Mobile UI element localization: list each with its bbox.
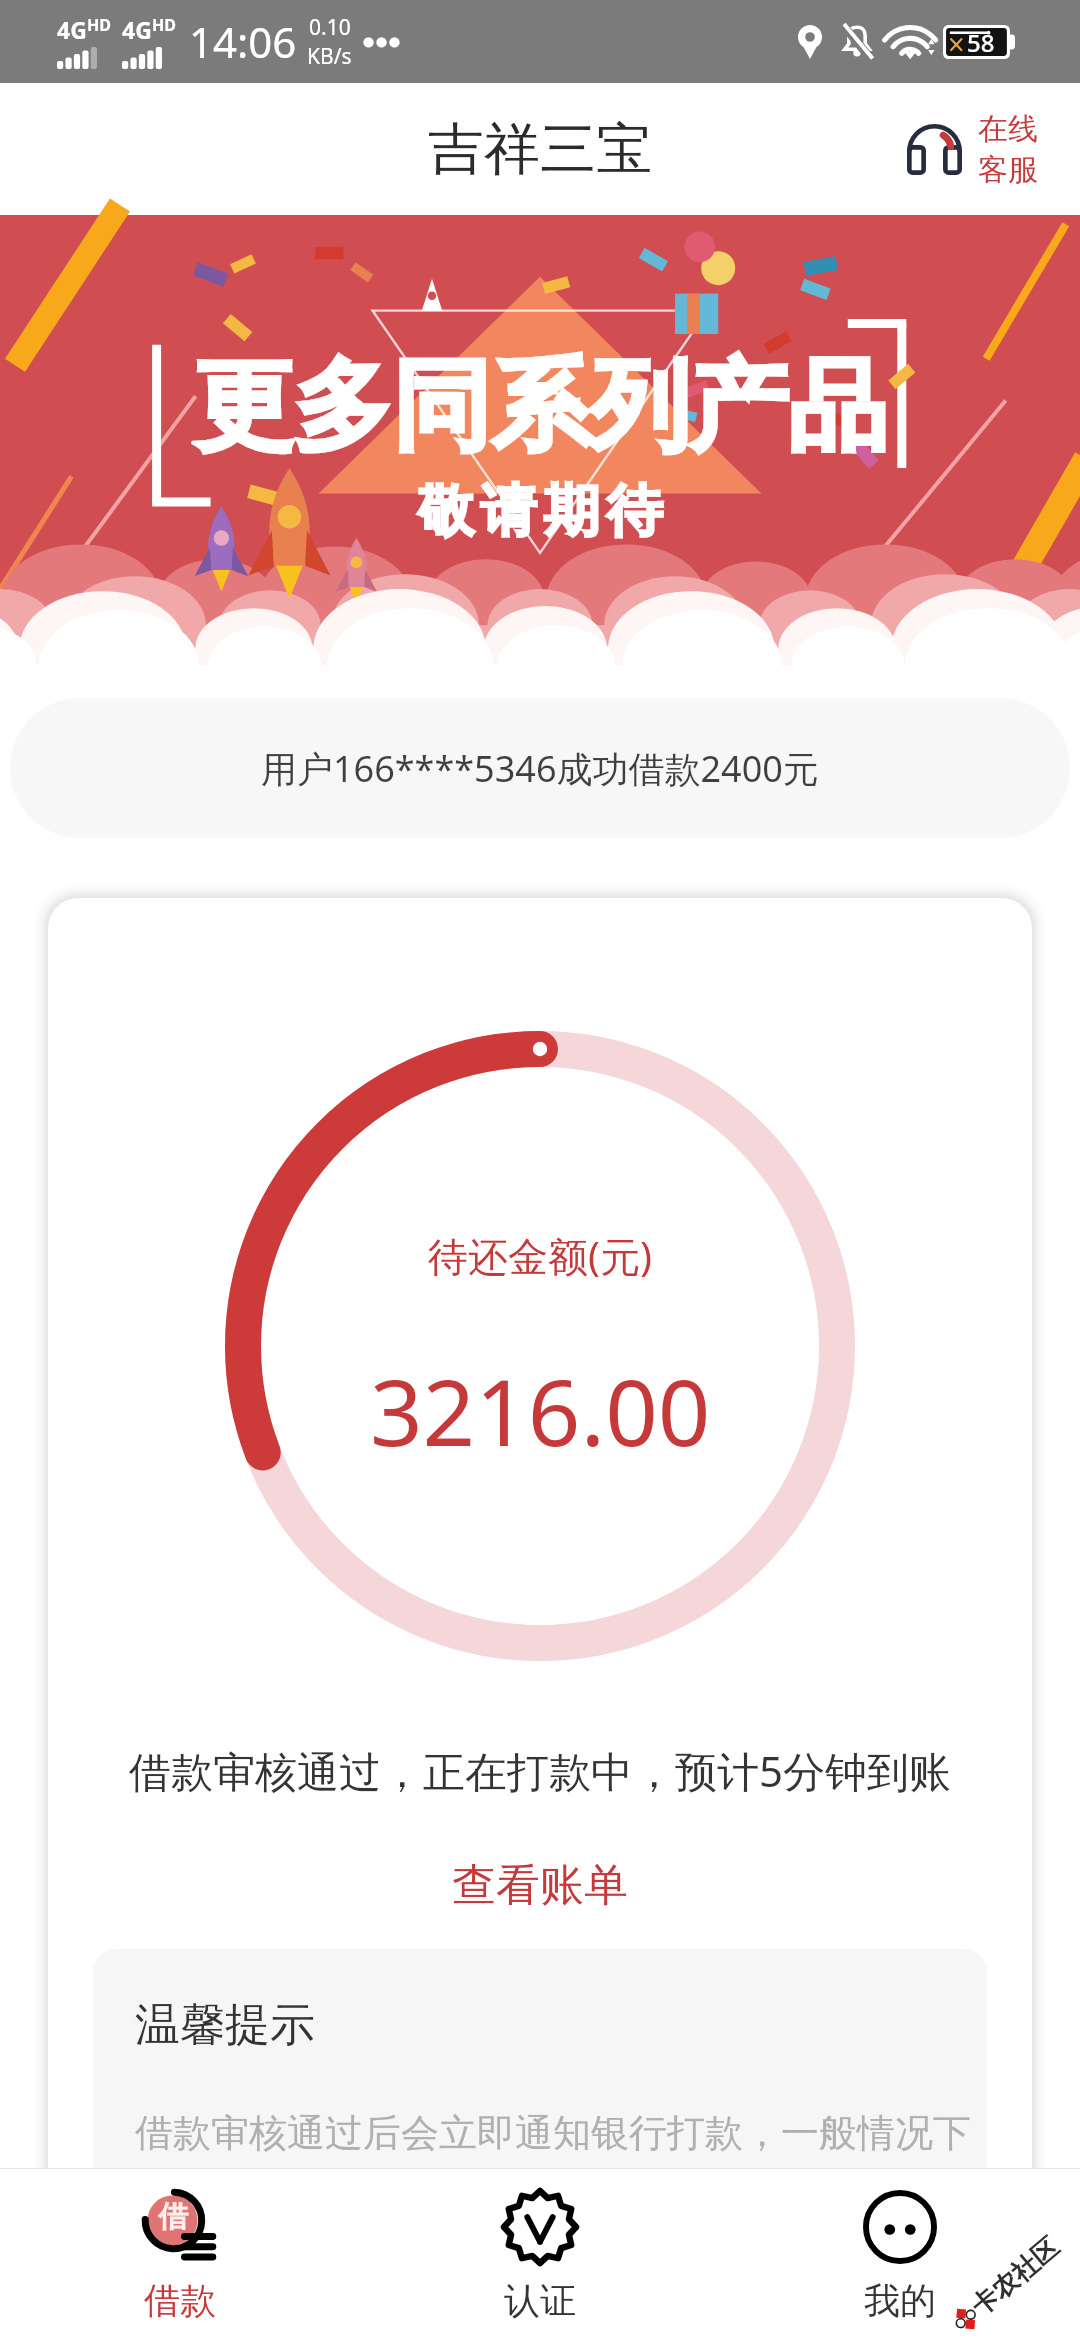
staticText: 客服 (978, 151, 1038, 189)
button[interactable]: 我的 (720, 2169, 1080, 2340)
staticText: 4G (57, 14, 87, 45)
button[interactable]: 在线客服 (903, 106, 1042, 193)
staticText: 待还金额(元) (428, 1228, 652, 1283)
staticText: 温馨提示 (135, 1997, 315, 2054)
staticText: 14:06 (189, 13, 297, 70)
staticText: 借 (158, 2198, 188, 2236)
staticText: 用户166****5346成功借款2400元 (261, 744, 819, 793)
staticText: 在线 (978, 110, 1038, 148)
button[interactable]: 更多同系列产品 敬请期待 (0, 215, 1080, 640)
staticText: 借款审核通过后会立即通知银行打款，一般情况下会在5分 (135, 2109, 987, 2157)
staticText: 借款审核通过，正在打款中，预计5分钟到账 (129, 1742, 952, 1799)
staticText: 0.10 (309, 13, 351, 42)
button[interactable]: 查看账单 (438, 1852, 642, 1919)
staticText: HD (87, 14, 111, 36)
staticText: 3216.00 (370, 1348, 711, 1473)
staticText: 4G (122, 14, 152, 45)
staticText: 认证 (504, 2278, 576, 2323)
staticText: 58 (967, 26, 995, 59)
button[interactable]: 认证 (360, 2169, 720, 2340)
button[interactable]: 用户166****5346成功借款2400元 (10, 698, 1070, 838)
staticText: 借款 (144, 2278, 216, 2323)
staticText: 卡农社区 (965, 2231, 1066, 2323)
staticText: 敬请期待 (414, 476, 666, 547)
staticText: 吉祥三宝 (428, 114, 652, 185)
button[interactable]: 借 (0, 2169, 360, 2340)
staticText: 我的 (864, 2278, 936, 2323)
staticText: HD (152, 14, 176, 36)
staticText: 查看账单 (452, 1858, 628, 1913)
staticText: KB/s (307, 42, 352, 71)
staticText: 更多同系列产品 (194, 345, 887, 470)
